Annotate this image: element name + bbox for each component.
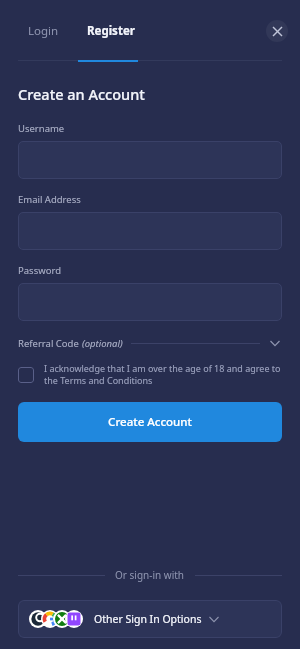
button[interactable]: Register	[77, 15, 145, 47]
button[interactable]: Other Sign In Options	[18, 600, 282, 638]
staticText: Or sign-in with	[115, 568, 185, 582]
button[interactable]: I acknowledge that I am over the age of …	[18, 362, 282, 387]
button[interactable]: Create Account	[18, 402, 282, 442]
staticText: Password	[18, 264, 61, 277]
staticText: Register	[87, 23, 135, 39]
button[interactable]	[18, 212, 282, 250]
button[interactable]: Close	[266, 20, 288, 42]
staticText: Email Address	[18, 193, 81, 206]
button[interactable]	[18, 141, 282, 179]
button[interactable]	[18, 283, 282, 321]
staticText: Create an Account	[18, 84, 145, 104]
staticText: Create Account	[108, 414, 192, 430]
staticText: (optional)	[82, 337, 123, 350]
staticText: Referral Code	[18, 337, 82, 350]
staticText: Login	[28, 23, 59, 39]
button[interactable]: Referral Code	[18, 336, 282, 350]
button[interactable]: Login	[18, 15, 69, 47]
staticText: Other Sign In Options	[94, 612, 202, 626]
staticText: Username	[18, 122, 65, 135]
staticText: I acknowledge that I am over the age of …	[44, 362, 282, 387]
